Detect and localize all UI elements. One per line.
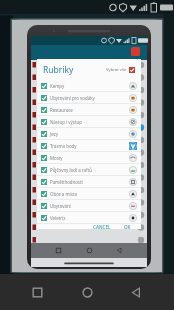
button[interactable]: Vybrat vše <box>106 67 135 73</box>
button[interactable]: Trasma body <box>37 140 141 152</box>
staticText: OK <box>124 224 131 229</box>
button[interactable]: Mosty <box>37 152 141 164</box>
staticText: Kempy <box>50 83 65 89</box>
button[interactable]: Půjčovny lodí a raftů <box>37 164 141 176</box>
staticText: Rubriky <box>43 64 74 76</box>
staticText: Restaurace <box>50 107 73 113</box>
staticText: Vybrat vše <box>106 67 127 73</box>
staticText: Ubytování <box>50 203 71 209</box>
staticText: Půjčovny lodí a raftů <box>50 167 92 173</box>
button[interactable]: Kempy <box>37 80 141 92</box>
staticText: Jezy <box>50 131 58 137</box>
button[interactable]: Back <box>125 281 148 304</box>
button[interactable]: CANCEL <box>90 224 114 229</box>
button[interactable]: Ubytování <box>37 200 141 212</box>
staticText: Obce a místa <box>50 191 77 197</box>
staticText: Veletrix <box>50 215 66 221</box>
button[interactable]: OK <box>121 224 134 229</box>
button[interactable]: Home <box>76 281 99 304</box>
button[interactable]: Restaurace <box>37 104 141 116</box>
button[interactable]: Veletrix <box>37 212 141 224</box>
button[interactable]: Nástup i výstup <box>37 116 141 128</box>
button[interactable]: Recent apps <box>26 281 49 304</box>
staticText: Trasma body <box>50 143 77 149</box>
staticText: Nástup i výstup <box>50 119 82 125</box>
staticText: Pamětihodnosti <box>50 179 83 185</box>
staticText: CANCEL <box>93 224 111 229</box>
button[interactable]: Pamětihodnosti <box>37 176 141 188</box>
button[interactable]: Obce a místa <box>37 188 141 200</box>
button[interactable]: Jezy <box>37 128 141 140</box>
button[interactable]: Ubytování pro vodáky <box>37 92 141 104</box>
staticText: Ubytování pro vodáky <box>50 95 95 101</box>
staticText: Mosty <box>50 155 63 161</box>
